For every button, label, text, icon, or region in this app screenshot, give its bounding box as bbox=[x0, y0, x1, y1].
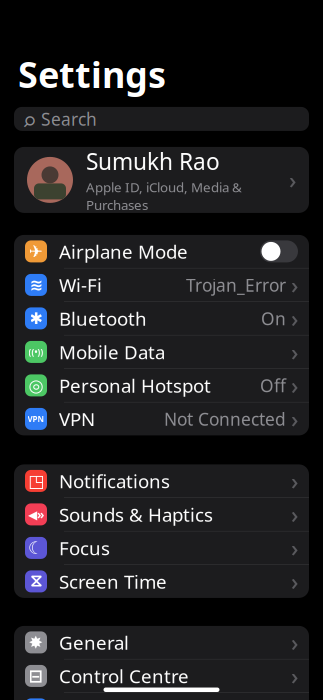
button[interactable]: ✈ bbox=[14, 235, 309, 268]
staticText: Trojan_Error bbox=[186, 273, 286, 296]
staticText: Apple ID, iCloud, Media & Purchases bbox=[86, 178, 242, 214]
staticText: ⧖ bbox=[30, 573, 42, 590]
staticText: › bbox=[291, 627, 298, 657]
staticText: › bbox=[291, 466, 298, 496]
staticText: ☾ bbox=[28, 538, 44, 558]
button[interactable]: ◳ bbox=[14, 464, 309, 497]
button[interactable]: Sumukh Rao bbox=[14, 147, 309, 213]
staticText: ✈ bbox=[28, 242, 43, 261]
staticText: ◎ bbox=[28, 376, 43, 395]
staticText: › bbox=[291, 270, 298, 300]
staticText: ✱ bbox=[29, 309, 42, 327]
staticText: Notifications bbox=[59, 468, 170, 493]
staticText: Personal Hotspot bbox=[59, 373, 211, 398]
staticText: › bbox=[289, 165, 296, 195]
staticText: Not Connected bbox=[164, 407, 286, 430]
staticText: Screen Time bbox=[59, 569, 167, 594]
staticText: Airplane Mode bbox=[59, 239, 188, 264]
staticText: VPN bbox=[27, 414, 44, 424]
staticText: › bbox=[291, 533, 298, 563]
staticText: ◳ bbox=[28, 471, 44, 491]
button[interactable]: ⊟ bbox=[14, 659, 309, 692]
button[interactable]: ✱ bbox=[14, 302, 309, 335]
button[interactable]: A bbox=[14, 693, 309, 700]
staticText: › bbox=[291, 337, 298, 367]
staticText: Bluetooth bbox=[59, 306, 147, 331]
button[interactable]: ◀» bbox=[14, 498, 309, 531]
staticText: Sounds & Haptics bbox=[59, 502, 213, 527]
staticText: VPN bbox=[59, 406, 95, 431]
staticText: › bbox=[291, 370, 298, 400]
staticText: › bbox=[291, 303, 298, 333]
button[interactable]: ⌕ bbox=[14, 107, 309, 131]
staticText: On bbox=[261, 307, 286, 330]
button[interactable]: ◎ bbox=[14, 369, 309, 402]
staticText: › bbox=[291, 404, 298, 434]
staticText: ✸ bbox=[28, 633, 43, 652]
button[interactable]: ✸ bbox=[14, 626, 309, 659]
staticText: General bbox=[59, 630, 129, 655]
staticText: Focus bbox=[59, 535, 110, 560]
staticText: Mobile Data bbox=[59, 339, 165, 364]
staticText: ≋ bbox=[29, 276, 42, 294]
button[interactable]: ((•)) bbox=[14, 335, 309, 368]
staticText: Search bbox=[41, 107, 97, 130]
staticText: Sumukh Rao bbox=[86, 146, 220, 176]
staticText: › bbox=[291, 499, 298, 529]
staticText: Control Centre bbox=[59, 663, 189, 688]
staticText: Settings bbox=[18, 50, 166, 98]
button[interactable]: ≋ bbox=[14, 268, 309, 301]
staticText: › bbox=[291, 661, 298, 691]
button[interactable]: ⧖ bbox=[14, 565, 309, 598]
button[interactable]: ☾ bbox=[14, 531, 309, 564]
staticText: ◀» bbox=[28, 506, 44, 522]
staticText: Wi-Fi bbox=[59, 272, 102, 297]
staticText: ((•)) bbox=[28, 347, 43, 357]
staticText: › bbox=[291, 566, 298, 596]
staticText: ⌕ bbox=[23, 99, 36, 139]
button[interactable]: VPN bbox=[14, 402, 309, 435]
staticText: ⊟ bbox=[28, 666, 43, 686]
staticText: Off bbox=[260, 374, 286, 397]
